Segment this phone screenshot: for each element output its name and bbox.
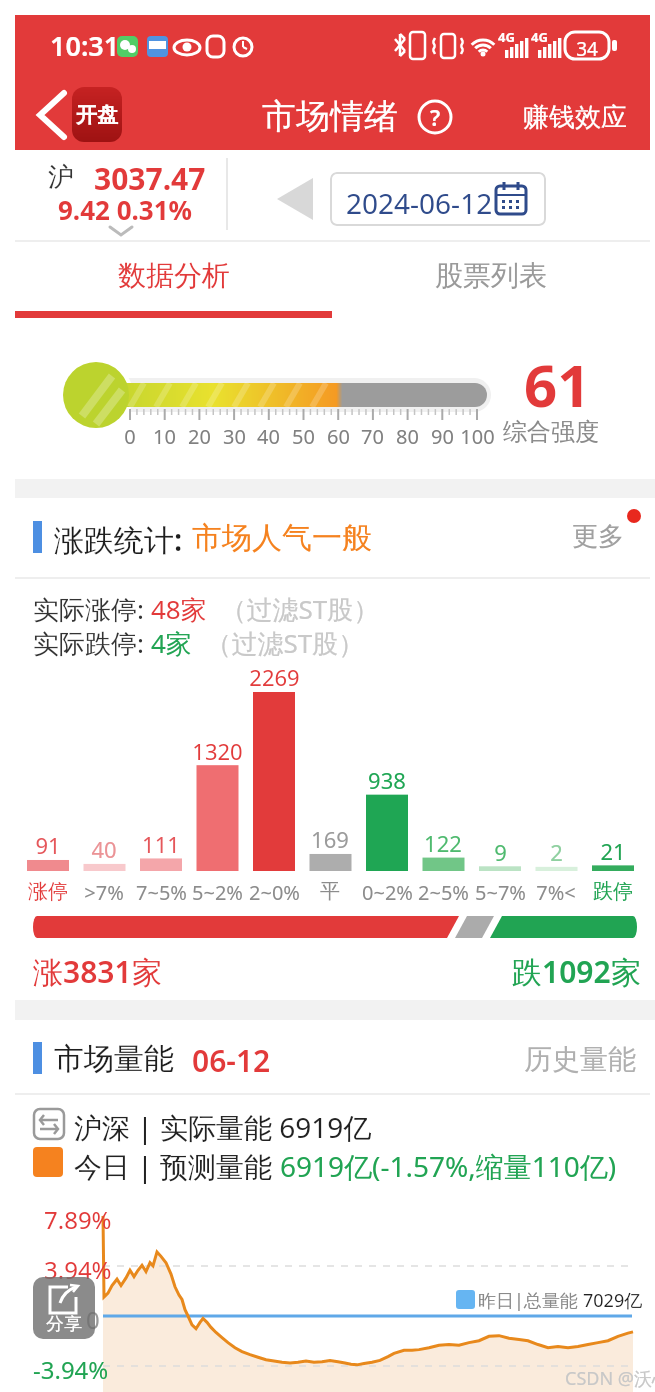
staticText: 市场人气一般 [192,519,372,557]
staticText: 1320 [192,736,243,766]
staticText: 平 [320,879,340,904]
staticText: 7~5% [136,879,187,906]
staticText: 赚钱效应 [523,101,627,134]
staticText: 实际跌停: [33,625,151,661]
staticText: 7029亿 [583,1288,643,1313]
staticText: 实际涨停: [33,591,151,627]
staticText: 60 [327,423,350,450]
staticText: 昨日|总量能 [478,1288,583,1313]
staticText: 938 [368,765,406,795]
staticText: 30 [223,423,246,450]
staticText: 4G [531,28,548,46]
staticText: 4家 [151,625,192,661]
staticText: 7.89% [44,1203,112,1236]
button[interactable]: 历史量能 [510,1036,640,1080]
staticText: 分享 [46,1313,82,1336]
staticText: 0 [124,423,136,450]
staticText: （过滤ST股） [207,591,380,627]
staticText: 111 [142,829,180,859]
staticText: 股票列表 [435,258,547,293]
staticText: 70 [361,423,384,450]
staticText: 数据分析 [118,258,230,293]
staticText: 61 [524,345,591,424]
staticText: 3.94% [44,1253,112,1286]
staticText: 2024-06-12 [346,184,493,222]
button[interactable]: 数据分析 [15,246,333,318]
staticText: 5~7% [475,879,526,906]
staticText: 0~2% [362,879,413,906]
staticText: 2~5% [418,879,469,906]
staticText: 跌1092家 [512,951,641,992]
button[interactable] [28,85,78,145]
staticText: >7% [84,879,124,906]
staticText: 21 [600,836,626,866]
staticText: 开盘 [76,102,118,128]
staticText: 沪 [48,161,74,194]
staticText: 涨跌统计: [54,519,183,560]
staticText: 40 [91,834,117,864]
staticText: 40 [257,423,280,450]
button[interactable]: 更多 [570,515,640,557]
staticText: 6919亿(-1.57%,缩量110亿) [280,1147,617,1185]
staticText: 90 [431,423,454,450]
button[interactable]: 开盘 [72,87,122,142]
button[interactable] [275,178,315,220]
staticText: CSDN @沃心 [565,1366,655,1391]
staticText: 综合强度 [503,417,599,447]
button[interactable]: 股票列表 [333,246,650,318]
staticText: 2~0% [249,879,300,906]
staticText: 20 [188,423,211,450]
staticText: 9 [494,837,507,867]
staticText: 跌停 [593,879,633,904]
staticText: 历史量能 [524,1042,636,1077]
staticText: 169 [311,824,349,854]
button[interactable]: 2024-06-12 [330,172,546,226]
staticText: 0 [86,1303,100,1336]
staticText: 涨3831家 [33,951,162,992]
staticText: 48家 [151,591,207,627]
staticText: 122 [424,828,462,858]
staticText: 涨停 [28,879,68,904]
staticText: 市场量能 [54,1040,174,1078]
button[interactable]: 赚钱效应 [510,95,640,139]
staticText: 34 [576,36,598,62]
staticText: 10:31 [50,27,120,64]
staticText: -3.94% [33,1353,109,1386]
staticText: 5~2% [192,879,243,906]
staticText: 80 [396,423,419,450]
staticText: 9.42 0.31% [58,192,193,227]
staticText: 今日 | 预测量能 [74,1147,280,1185]
staticText: 沪深 | 实际量能 6919亿 [74,1108,372,1146]
staticText: ? [430,102,441,132]
staticText: 100 [460,423,495,450]
staticText: 91 [35,830,61,860]
staticText: 市场情绪 [262,95,398,138]
staticText: 2 [550,837,563,867]
staticText: 50 [292,423,315,450]
staticText: 7%< [536,879,576,906]
staticText: 2269 [249,662,300,692]
staticText: 10 [153,423,176,450]
button[interactable]: 分享 [33,1277,95,1339]
staticText: 更多 [572,520,624,553]
staticText: 06-12 [192,1040,271,1081]
staticText: 3037.47 [94,158,206,199]
staticText: （过滤ST股） [192,625,365,661]
staticText: 4G [498,28,515,46]
